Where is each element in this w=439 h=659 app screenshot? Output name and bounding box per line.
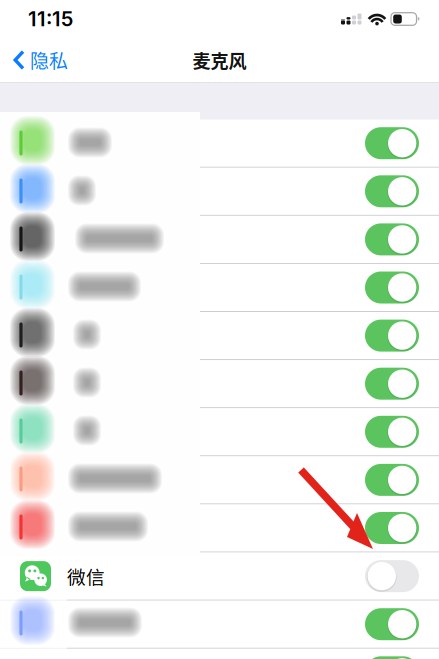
staticText: 麦克风 — [192, 47, 246, 73]
button[interactable] — [0, 312, 439, 359]
button[interactable] — [0, 216, 439, 263]
staticText: 隐私 — [30, 46, 68, 74]
button[interactable] — [0, 408, 439, 455]
button[interactable] — [0, 120, 439, 167]
button[interactable] — [0, 649, 439, 659]
button[interactable] — [0, 264, 439, 311]
button[interactable] — [0, 456, 439, 503]
staticText: 11:15 — [28, 7, 73, 31]
staticText: 微信 — [67, 563, 105, 590]
button[interactable] — [0, 360, 439, 407]
button[interactable]: 返回 隐私 — [0, 38, 110, 82]
button[interactable]: 微信 — [0, 552, 439, 600]
button[interactable] — [0, 504, 439, 552]
button[interactable] — [0, 168, 439, 215]
button[interactable] — [0, 601, 439, 648]
